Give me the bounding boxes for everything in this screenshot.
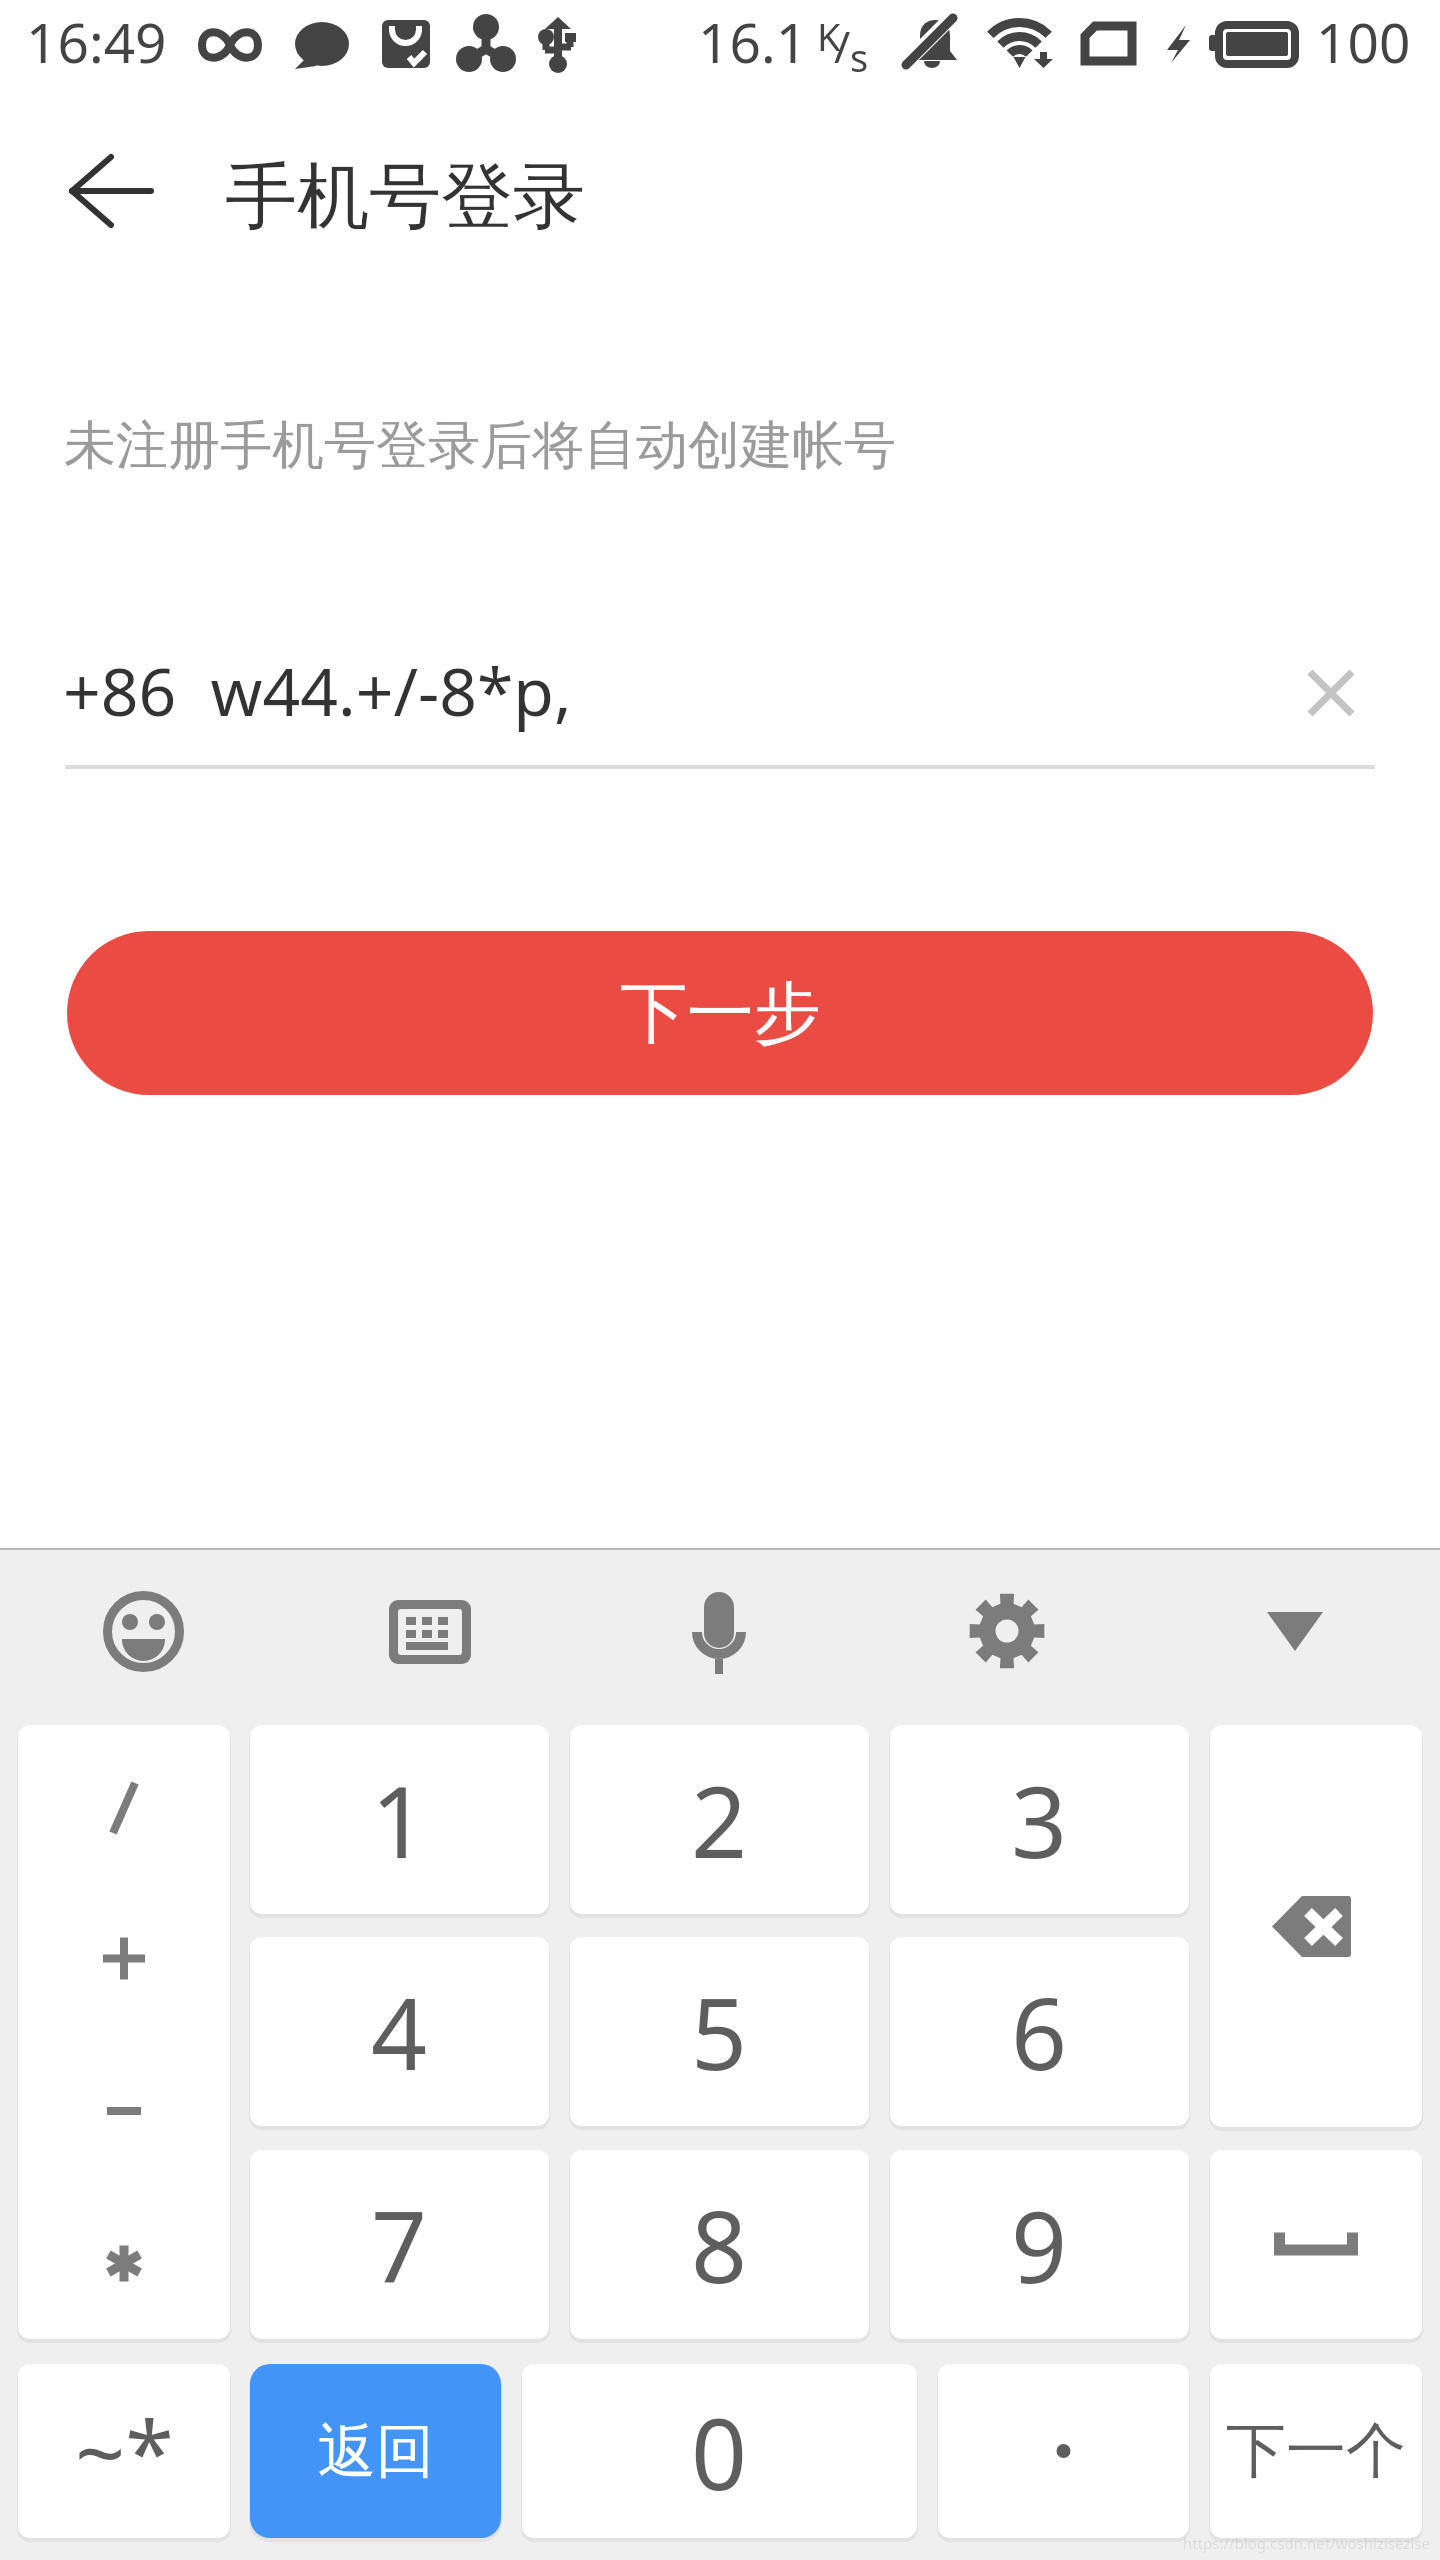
staticText: / — [834, 16, 851, 76]
staticText: 8 — [691, 2178, 748, 2311]
button[interactable]: Dot — [938, 2364, 1189, 2538]
button[interactable]: 5 — [570, 1937, 869, 2126]
staticText: 9 — [1011, 2178, 1068, 2311]
button[interactable]: 4 — [250, 1937, 549, 2126]
button[interactable]: Symbols — [18, 1725, 230, 2339]
staticText: 16.1 — [698, 4, 808, 79]
button[interactable]: Back — [40, 140, 156, 256]
staticText: 0 — [691, 2385, 748, 2518]
button[interactable]: Clear — [1295, 657, 1367, 729]
staticText: https://blog.csdn.net/woshizisezise — [1183, 2533, 1430, 2553]
button[interactable]: Hide keyboard — [1240, 1576, 1350, 1686]
staticText: 5 — [691, 1965, 748, 2098]
staticText: 1 — [371, 1753, 428, 1886]
staticText: 手机号登录 — [225, 152, 585, 243]
button[interactable]: Emoji — [88, 1576, 198, 1686]
button[interactable]: Voice input — [664, 1576, 774, 1686]
staticText: 6 — [1011, 1965, 1068, 2098]
button[interactable]: ~* — [18, 2364, 230, 2538]
staticText: 下一个 — [1226, 2413, 1406, 2489]
staticText: 100 — [1316, 4, 1411, 79]
button[interactable]: Backspace — [1210, 1725, 1422, 2127]
button[interactable]: 0 — [522, 2364, 917, 2538]
button[interactable]: Keyboard — [375, 1576, 485, 1686]
staticText: 返回 — [318, 2415, 434, 2488]
staticText: 7 — [371, 2178, 428, 2311]
button[interactable]: 7 — [250, 2150, 549, 2339]
button[interactable]: 6 — [890, 1937, 1189, 2126]
staticText: 2 — [691, 1753, 748, 1886]
staticText: 未注册手机号登录后将自动创建帐号 — [64, 413, 896, 479]
button[interactable]: 1 — [250, 1725, 549, 1914]
staticText: 16:49 — [26, 4, 167, 79]
button[interactable]: 3 — [890, 1725, 1189, 1914]
button[interactable]: 8 — [570, 2150, 869, 2339]
button[interactable]: Space — [1210, 2150, 1422, 2339]
staticText: K — [817, 10, 841, 62]
staticText: s — [850, 31, 869, 83]
button[interactable]: 9 — [890, 2150, 1189, 2339]
button[interactable]: 下一个 — [1210, 2364, 1422, 2538]
staticText: 4 — [371, 1965, 428, 2098]
button[interactable]: 2 — [570, 1725, 869, 1914]
staticText: 3 — [1011, 1753, 1068, 1886]
staticText: 下一步 — [620, 971, 821, 1055]
button[interactable]: Settings — [952, 1576, 1062, 1686]
button[interactable]: 返回 — [250, 2364, 501, 2538]
staticText: ~* — [75, 2391, 174, 2511]
staticText: +86 w44.+/-8*p, — [63, 645, 572, 735]
button[interactable]: 下一步 — [67, 931, 1373, 1095]
